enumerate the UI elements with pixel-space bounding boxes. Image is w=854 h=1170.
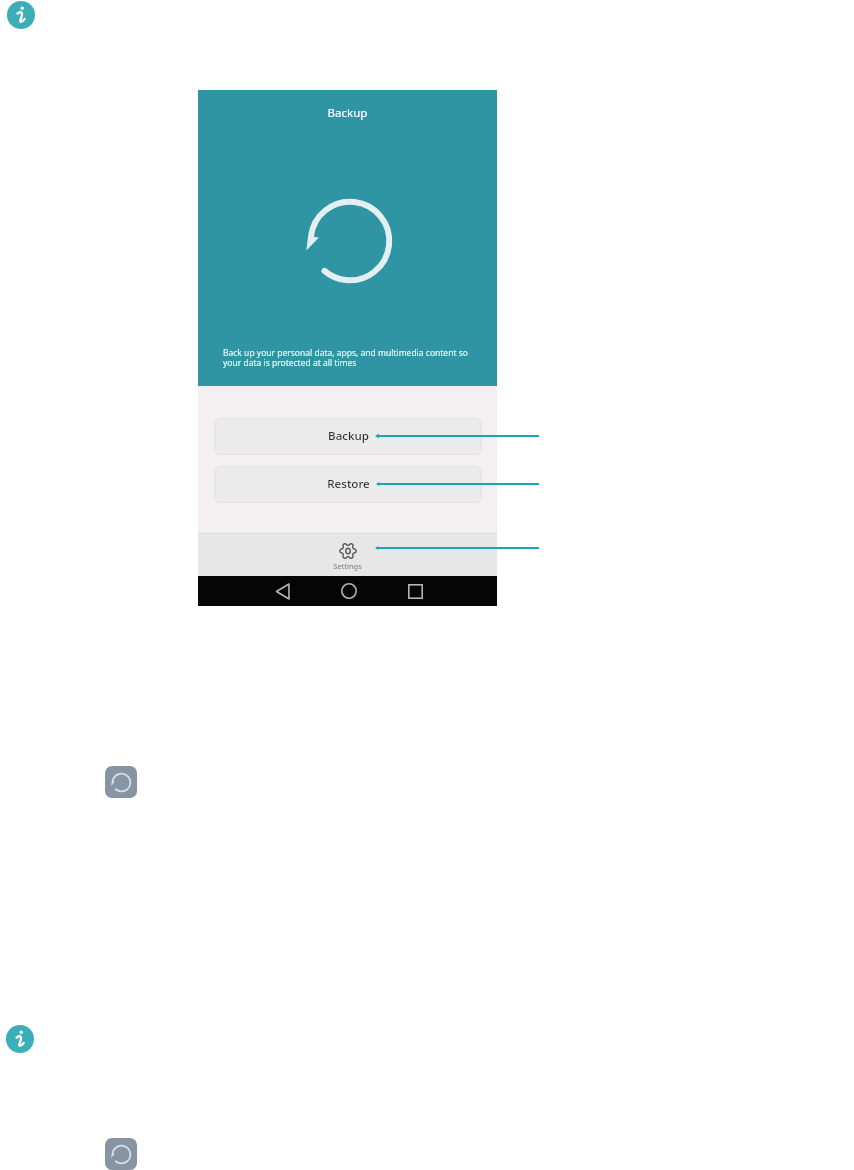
button[interactable]: Information <box>7 1 35 29</box>
staticText: Back up your personal data, apps, and mu… <box>223 347 479 369</box>
button[interactable]: Back <box>267 576 297 606</box>
button[interactable]: Backup <box>214 418 482 455</box>
staticText: Settings <box>333 561 362 571</box>
button[interactable]: Restore <box>214 466 482 503</box>
button[interactable]: Restore <box>105 1138 137 1170</box>
button[interactable]: Recent apps <box>400 576 430 606</box>
staticText: Restore <box>327 476 370 492</box>
staticText: Backup <box>198 105 497 121</box>
button[interactable]: Restore <box>105 766 137 798</box>
button[interactable]: Settings <box>333 542 362 571</box>
staticText: Backup <box>328 428 369 444</box>
button[interactable]: Home <box>334 576 364 606</box>
button[interactable]: Information <box>6 1025 34 1053</box>
